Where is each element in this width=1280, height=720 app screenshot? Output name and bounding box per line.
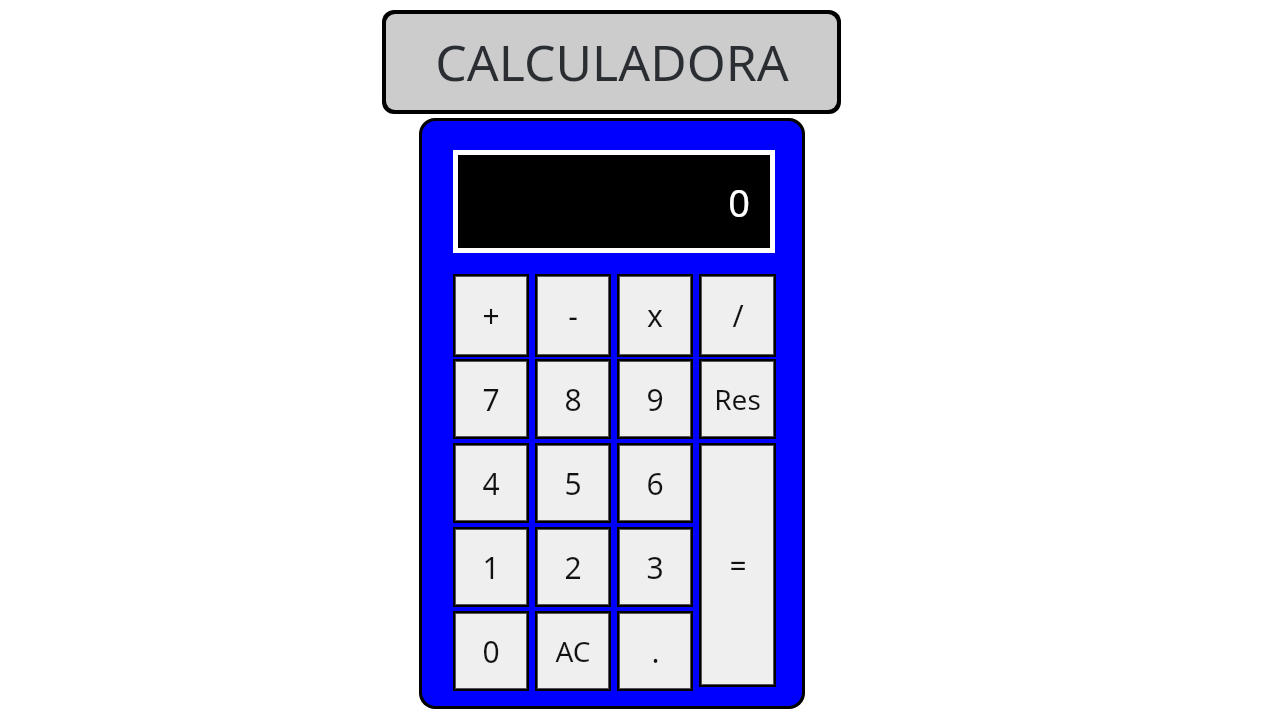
staticText: 0 [728, 176, 750, 228]
button[interactable]: 9 [619, 361, 691, 437]
button[interactable]: 1 [455, 529, 527, 605]
button[interactable]: Res [701, 361, 774, 437]
button[interactable]: 5 [537, 445, 609, 521]
staticText: 0 [482, 631, 500, 672]
staticText: 5 [564, 463, 582, 504]
staticText: . [651, 631, 660, 672]
button[interactable]: . [619, 613, 691, 689]
button[interactable]: 0 [455, 613, 527, 689]
button[interactable]: 8 [537, 361, 609, 437]
staticText: AC [555, 632, 591, 670]
staticText: 6 [646, 463, 664, 504]
button[interactable]: CALCULADORA [386, 14, 837, 110]
button[interactable]: 2 [537, 529, 609, 605]
staticText: 2 [564, 547, 582, 588]
staticText: x [647, 295, 663, 336]
button[interactable]: / [701, 276, 774, 355]
staticText: = [729, 545, 747, 586]
button[interactable]: AC [537, 613, 609, 689]
staticText: Res [714, 380, 761, 418]
button[interactable]: x [619, 276, 691, 355]
staticText: 3 [646, 547, 664, 588]
staticText: 1 [482, 547, 500, 588]
staticText: / [732, 295, 744, 336]
button[interactable]: 3 [619, 529, 691, 605]
button[interactable]: - [537, 276, 609, 355]
staticText: CALCULADORA [435, 28, 789, 96]
staticText: 4 [482, 463, 500, 504]
button[interactable]: + [455, 276, 527, 355]
button[interactable]: 7 [455, 361, 527, 437]
staticText: - [568, 295, 578, 336]
staticText: + [482, 295, 500, 336]
button[interactable]: 6 [619, 445, 691, 521]
staticText: 8 [564, 379, 582, 420]
staticText: 7 [482, 379, 500, 420]
button[interactable]: = [701, 445, 774, 685]
staticText: 9 [646, 379, 664, 420]
button[interactable]: 4 [455, 445, 527, 521]
